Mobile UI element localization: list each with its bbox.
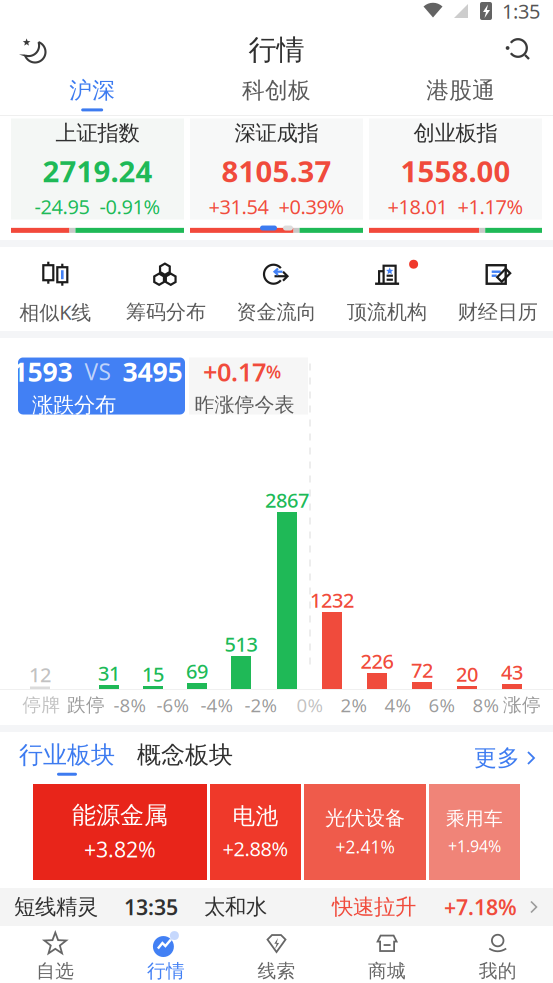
staticText: 沪深 (69, 77, 115, 104)
button[interactable]: 财经日历 (442, 247, 553, 331)
staticText: +31.54 +0.39% (208, 193, 344, 220)
staticText: 2867 (265, 487, 309, 513)
staticText: 行情 (248, 33, 304, 67)
button[interactable]: 行情 (111, 926, 221, 983)
staticText: 线索 (257, 959, 295, 982)
button[interactable]: +0.17 (189, 357, 308, 414)
button[interactable]: 上证指数 (11, 118, 184, 219)
staticText: -8% (113, 693, 146, 717)
button[interactable]: 深证成指 (190, 118, 363, 219)
staticText: 72 (411, 657, 433, 683)
staticText: 4% (384, 693, 411, 717)
staticText: 1558.00 (400, 151, 510, 190)
button[interactable]: 相似K线 (0, 247, 111, 331)
staticText: 行业板块 (19, 740, 115, 770)
staticText: 短线精灵 (14, 894, 98, 920)
staticText: 我的 (479, 959, 517, 982)
staticText: 快速拉升 (332, 894, 416, 920)
staticText: 太和水 (204, 894, 267, 920)
button[interactable]: 筹码分布 (111, 247, 221, 331)
staticText: +18.01 +1.17% (387, 193, 523, 220)
staticText: +1.94% (448, 835, 501, 856)
button[interactable]: 顶流机构 (332, 247, 442, 331)
staticText: 筹码分布 (126, 300, 206, 324)
staticText: +2.88% (222, 835, 288, 862)
button[interactable]: 商城 (332, 926, 442, 983)
staticText: 1:35 (502, 0, 540, 24)
staticText: 上证指数 (55, 120, 139, 146)
staticText: 20 (456, 661, 478, 687)
button[interactable]: 光伏设备 (304, 784, 426, 880)
button[interactable]: 行业板块 (17, 740, 117, 776)
staticText: 顶流机构 (347, 300, 427, 324)
staticText: 8% (472, 693, 499, 717)
staticText: 电池 (232, 802, 278, 830)
staticText: 513 (224, 631, 257, 657)
button[interactable]: Night mode (10, 27, 58, 73)
staticText: -2% (244, 693, 277, 717)
button[interactable]: 更多 (474, 744, 536, 772)
button[interactable]: 1593 (18, 357, 185, 414)
staticText: 能源金属 (72, 801, 168, 830)
staticText: 财经日历 (458, 300, 538, 324)
button[interactable]: Search (495, 27, 543, 73)
button[interactable]: 短线精灵 (0, 888, 553, 926)
staticText: 相似K线 (19, 299, 91, 325)
staticText: +7.18% (444, 893, 517, 921)
staticText: 43 (501, 659, 523, 685)
button[interactable]: 能源金属 (33, 784, 207, 880)
staticText: 31 (98, 660, 120, 686)
staticText: 资金流向 (236, 300, 316, 324)
button[interactable]: 沪深 (0, 73, 184, 115)
staticText: 深证成指 (234, 120, 318, 146)
staticText: 1232 (310, 587, 354, 613)
button[interactable]: 创业板指 (369, 118, 542, 219)
staticText: 乘用车 (446, 807, 503, 830)
staticText: 更多 (474, 744, 520, 772)
staticText: 6% (428, 693, 455, 717)
staticText: -4% (200, 693, 233, 717)
button[interactable]: 我的 (442, 926, 553, 983)
staticText: 港股通 (426, 77, 495, 104)
button[interactable]: 概念板块 (135, 740, 235, 776)
staticText: 8105.37 (221, 151, 331, 190)
staticText: 2% (340, 693, 367, 717)
staticText: 0% (296, 693, 323, 717)
staticText: 3495 (122, 354, 182, 389)
staticText: % (266, 360, 281, 383)
button[interactable]: 乘用车 (429, 784, 520, 880)
staticText: 1593 (12, 354, 72, 389)
staticText: -24.95 -0.91% (34, 193, 160, 220)
staticText: 12 (29, 661, 51, 688)
staticText: 创业板指 (413, 120, 497, 146)
staticText: 15 (142, 661, 164, 687)
button[interactable]: 电池 (210, 784, 301, 880)
staticText: 涨停 (503, 693, 541, 716)
staticText: 行情 (147, 959, 185, 982)
staticText: 13:35 (124, 893, 178, 921)
staticText: 光伏设备 (325, 806, 405, 830)
staticText: +3.82% (84, 835, 156, 863)
button[interactable]: 科创板 (184, 73, 369, 115)
staticText: -6% (156, 693, 189, 717)
staticText: 概念板块 (137, 740, 233, 770)
staticText: +0.17 (203, 355, 266, 388)
staticText: 涨跌分布 (32, 392, 116, 418)
staticText: 昨涨停今表 (194, 392, 294, 417)
staticText: 停牌 (22, 693, 60, 716)
staticText: 226 (360, 648, 393, 674)
staticText: 跌停 (67, 693, 105, 716)
staticText: 商城 (368, 959, 406, 982)
button[interactable]: 港股通 (369, 73, 553, 115)
staticText: 69 (186, 658, 208, 684)
button[interactable]: 线索 (221, 926, 332, 983)
staticText: VS (72, 356, 122, 386)
staticText: +2.41% (335, 835, 394, 858)
staticText: 科创板 (242, 77, 311, 104)
button[interactable]: 自选 (0, 926, 111, 983)
staticText: 2719.24 (42, 151, 152, 190)
button[interactable]: 资金流向 (221, 247, 332, 331)
staticText: 自选 (36, 959, 74, 982)
